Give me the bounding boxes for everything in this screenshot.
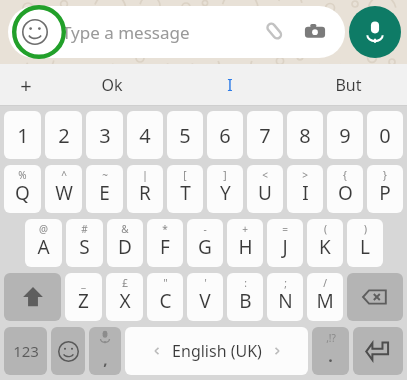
button[interactable]: 9 (327, 111, 363, 159)
button[interactable]: 6 (207, 111, 243, 159)
button[interactable]: < (247, 165, 283, 213)
button[interactable]: ; (267, 273, 303, 321)
staticText: % (18, 168, 27, 182)
staticText: V (199, 288, 211, 314)
button[interactable]: % (4, 165, 41, 213)
staticText: 3 (99, 122, 111, 149)
staticText: . (328, 345, 333, 367)
staticText: & (121, 222, 129, 236)
button[interactable]: Shift (4, 273, 61, 321)
staticText: A (37, 234, 50, 260)
staticText: G (198, 234, 212, 260)
button[interactable]: Enter (353, 327, 403, 375)
staticText: , (103, 349, 108, 369)
button[interactable]: ( (307, 219, 343, 267)
button[interactable]: _ (65, 273, 102, 321)
staticText: " (163, 276, 168, 290)
button[interactable]: { (327, 165, 363, 213)
staticText: F (160, 234, 170, 260)
button[interactable]: } (367, 165, 403, 213)
staticText: 8 (299, 122, 311, 149)
button[interactable]: Emoji (20, 17, 50, 47)
button[interactable]: ] (207, 165, 243, 213)
staticText: K (319, 234, 331, 260)
button[interactable]: ' (187, 273, 223, 321)
staticText: 4 (139, 122, 151, 149)
staticText: J (282, 234, 288, 260)
staticText: D (118, 234, 132, 260)
button[interactable]: Backspace (347, 273, 403, 321)
staticText: = (282, 222, 288, 236)
button[interactable]: 1 (4, 111, 41, 159)
button[interactable]: 8 (287, 111, 323, 159)
staticText: * (162, 222, 168, 236)
staticText: 7 (259, 122, 271, 149)
staticText: 123 (13, 341, 39, 361)
button[interactable]: 3 (86, 111, 123, 159)
button[interactable]: [ (167, 165, 203, 213)
button[interactable]: Emoji (8, 6, 345, 58)
button[interactable]: Camera (299, 16, 331, 48)
button[interactable]: & (107, 219, 143, 267)
button[interactable]: Voice input (89, 327, 121, 375)
staticText: | (142, 168, 148, 182)
button[interactable]: - (187, 219, 223, 267)
staticText: L (360, 234, 370, 260)
staticText: + (242, 222, 248, 236)
staticText: [ (183, 168, 187, 182)
button[interactable]: £ (106, 273, 143, 321)
staticText: B (239, 288, 252, 314)
staticText: M (316, 288, 334, 314)
button[interactable]: ~ (86, 165, 123, 213)
staticText: ; (284, 276, 287, 290)
button[interactable]: 2 (45, 111, 82, 159)
button[interactable]: Period (312, 327, 349, 375)
button[interactable]: 0 (367, 111, 403, 159)
button[interactable]: ) (347, 219, 383, 267)
button[interactable]: " (147, 273, 183, 321)
button[interactable]: > (287, 165, 323, 213)
button[interactable]: Attach (259, 16, 291, 48)
staticText: P (379, 180, 391, 206)
button[interactable]: Voice message (349, 6, 401, 58)
staticText: U (258, 180, 272, 206)
staticText: # (81, 222, 88, 236)
staticText: I (302, 180, 309, 206)
staticText: E (99, 180, 110, 206)
staticText: H (238, 234, 253, 260)
staticText: R (139, 180, 151, 206)
button[interactable]: = (267, 219, 303, 267)
staticText: 6 (219, 122, 231, 149)
button[interactable]: / (307, 273, 343, 321)
button[interactable]: 7 (247, 111, 283, 159)
button[interactable]: 123 (4, 327, 47, 375)
staticText: > (302, 168, 308, 182)
staticText: English (UK) (172, 340, 262, 362)
button[interactable]: * (147, 219, 183, 267)
button[interactable]: : (227, 273, 263, 321)
staticText: T (180, 180, 191, 206)
button[interactable]: Space (125, 327, 308, 375)
staticText: Y (220, 180, 231, 206)
staticText: Z (78, 288, 89, 314)
button[interactable]: Emoji (51, 327, 85, 375)
staticText: < (262, 168, 268, 182)
staticText: : (244, 276, 247, 290)
button[interactable]: + (227, 219, 263, 267)
button[interactable]: 5 (167, 111, 203, 159)
staticText: O (338, 180, 353, 206)
staticText: C (159, 288, 172, 314)
button[interactable]: But (289, 64, 407, 106)
button[interactable]: I (171, 64, 289, 106)
button[interactable]: @ (25, 219, 62, 267)
button[interactable]: Ok (52, 64, 171, 106)
button[interactable]: 4 (127, 111, 163, 159)
button[interactable]: # (66, 219, 103, 267)
staticText: 0 (379, 122, 391, 149)
button[interactable]: ^ (45, 165, 82, 213)
staticText: ' (204, 276, 207, 290)
staticText: S (79, 234, 90, 260)
staticText: W (55, 180, 73, 206)
button[interactable]: More suggestions (0, 64, 52, 106)
button[interactable]: | (127, 165, 163, 213)
